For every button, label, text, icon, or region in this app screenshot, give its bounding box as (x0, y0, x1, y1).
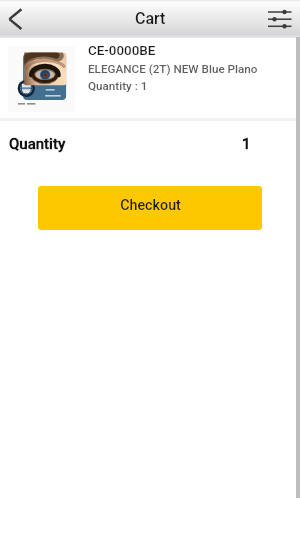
button[interactable]: Checkout (38, 186, 262, 230)
button[interactable]: Quantity (0, 121, 300, 166)
staticText: Checkout (120, 197, 181, 214)
staticText: ELEGANCE (2T) NEW Blue Plano (88, 62, 258, 76)
staticText: Quantity (9, 135, 66, 153)
staticText: 1 (242, 135, 251, 153)
staticText: Quantity : 1 (88, 79, 148, 93)
button[interactable]: Back (0, 0, 38, 38)
staticText: Cart (135, 9, 166, 28)
button[interactable]: Filter settings (262, 0, 300, 38)
staticText: CE-0000BE (88, 43, 156, 59)
button[interactable]: CE-0000BE (0, 38, 300, 118)
